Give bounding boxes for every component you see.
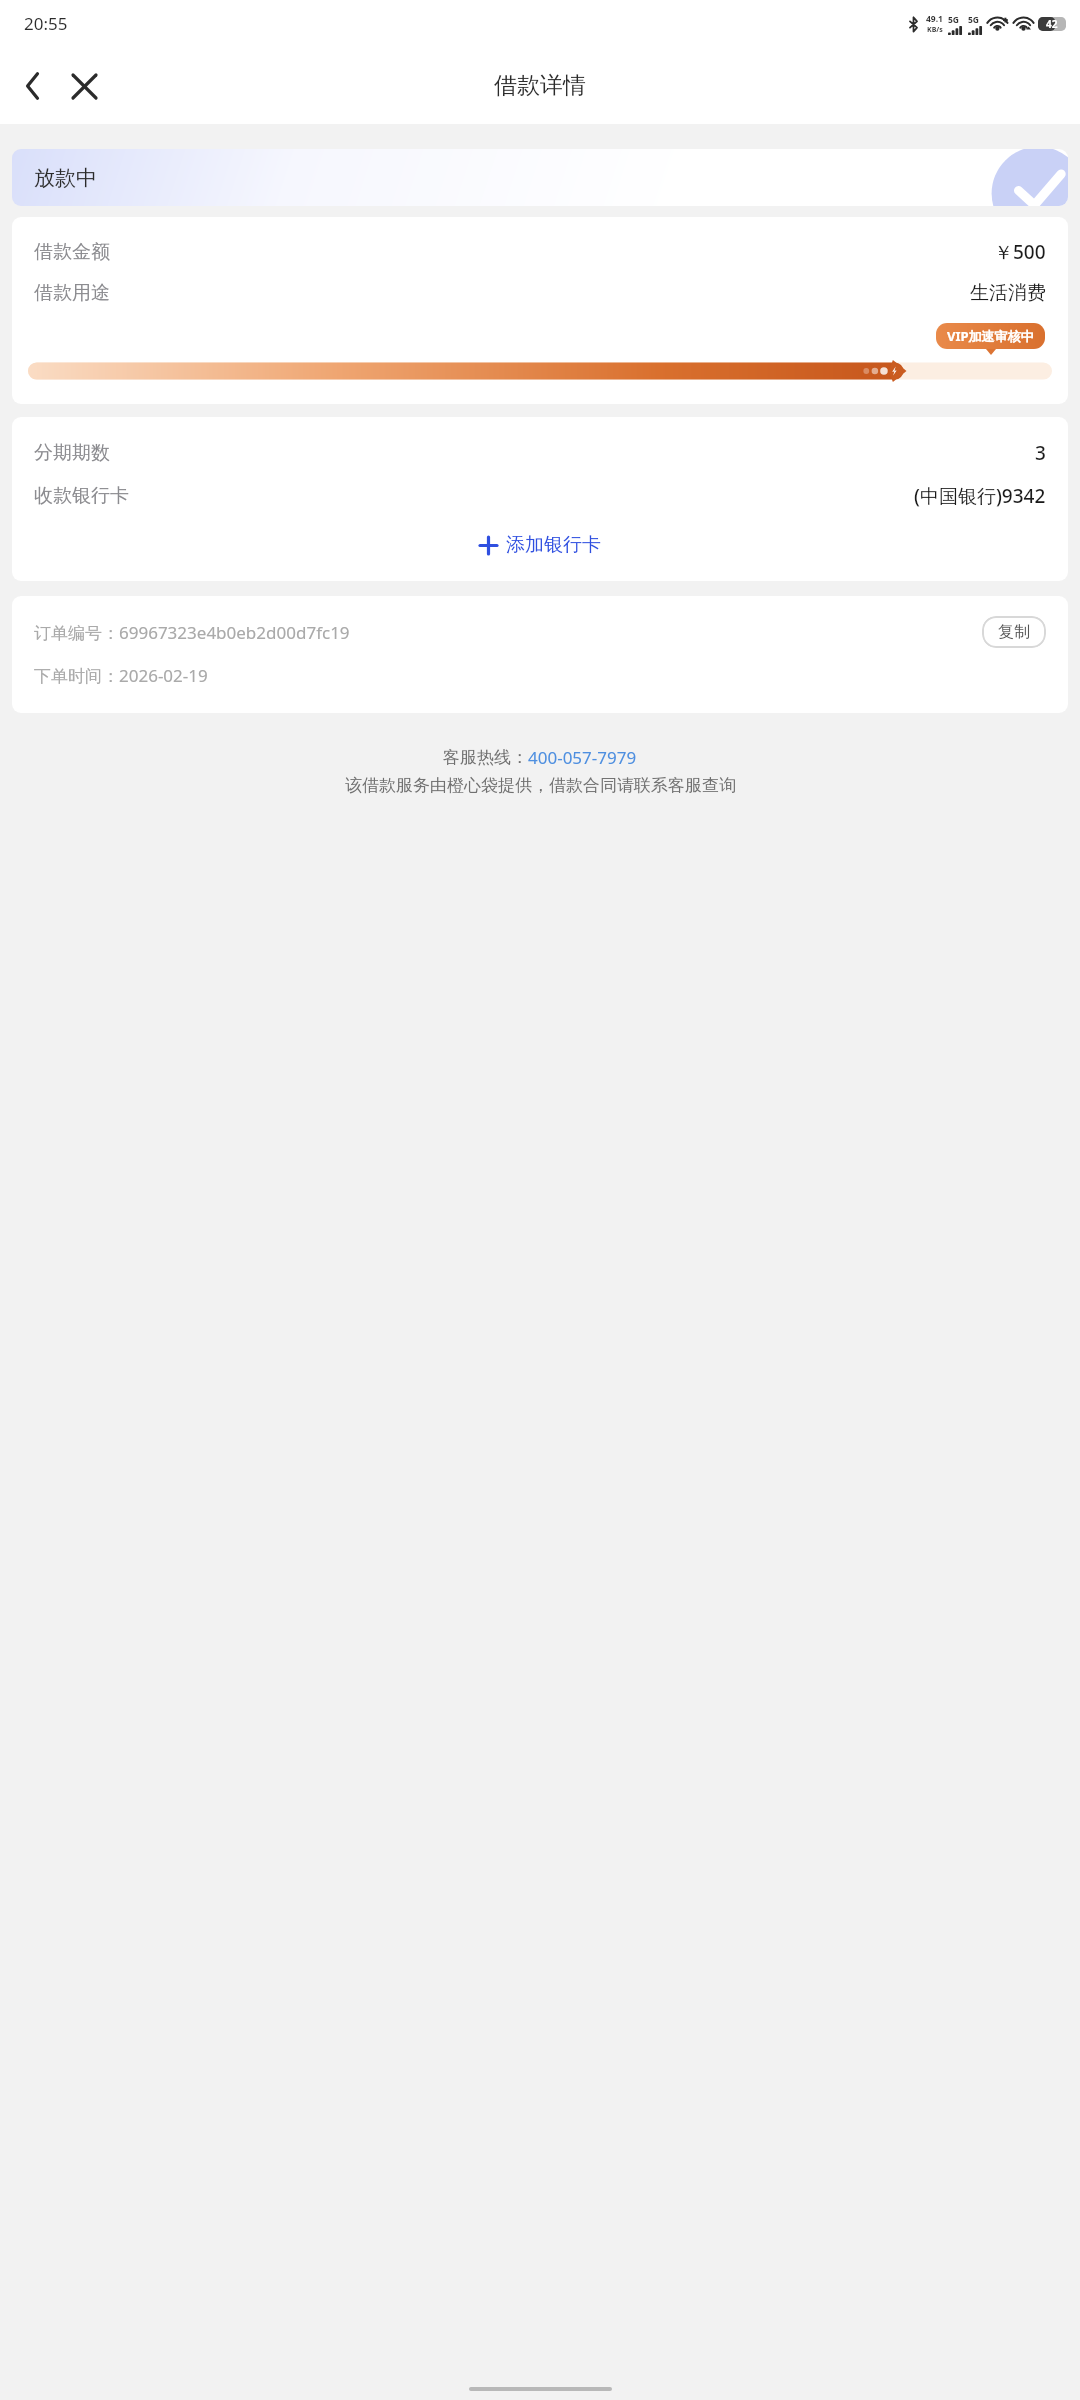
staticText: 400-057-7979 — [528, 746, 637, 769]
staticText: 下单时间：2026-02-19 — [34, 664, 208, 687]
button[interactable]: VIP加速审核中 — [947, 327, 1034, 345]
staticText: 该借款服务由橙心袋提供，借款合同请联系客服查询 — [345, 775, 736, 796]
staticText: 借款金额 — [34, 240, 110, 264]
staticText: 42 — [1046, 17, 1058, 31]
staticText: 借款详情 — [494, 71, 586, 100]
staticText: 收款银行卡 — [34, 484, 129, 508]
staticText: VIP加速审核中 — [947, 327, 1034, 345]
staticText: 生活消费 — [970, 281, 1046, 305]
staticText: KB/s — [927, 25, 943, 35]
staticText: ￥500 — [994, 239, 1046, 265]
staticText: 复制 — [998, 622, 1030, 642]
staticText: 49.1 — [926, 13, 943, 25]
button[interactable]: 放款中 — [12, 149, 1068, 206]
staticText: 20:55 — [24, 12, 68, 35]
staticText: 分期期数 — [34, 441, 110, 465]
staticText: 5G — [968, 14, 980, 26]
staticText: 3 — [1035, 440, 1046, 466]
button[interactable]: 添加银行卡 — [12, 525, 1068, 565]
staticText: 放款中 — [34, 165, 97, 191]
staticText: 客服热线： — [443, 747, 528, 768]
button[interactable]: 400-057-7979 — [528, 746, 637, 769]
button[interactable]: Back — [8, 61, 58, 111]
button[interactable]: Close — [58, 60, 110, 112]
staticText: (中国银行)9342 — [914, 483, 1046, 509]
staticText: 5G — [948, 14, 960, 26]
button[interactable]: 复制 — [982, 616, 1046, 648]
staticText: 订单编号：69967323e4b0eb2d00d7fc19 — [34, 621, 982, 644]
staticText: 借款用途 — [34, 281, 110, 305]
staticText: 添加银行卡 — [506, 533, 601, 557]
